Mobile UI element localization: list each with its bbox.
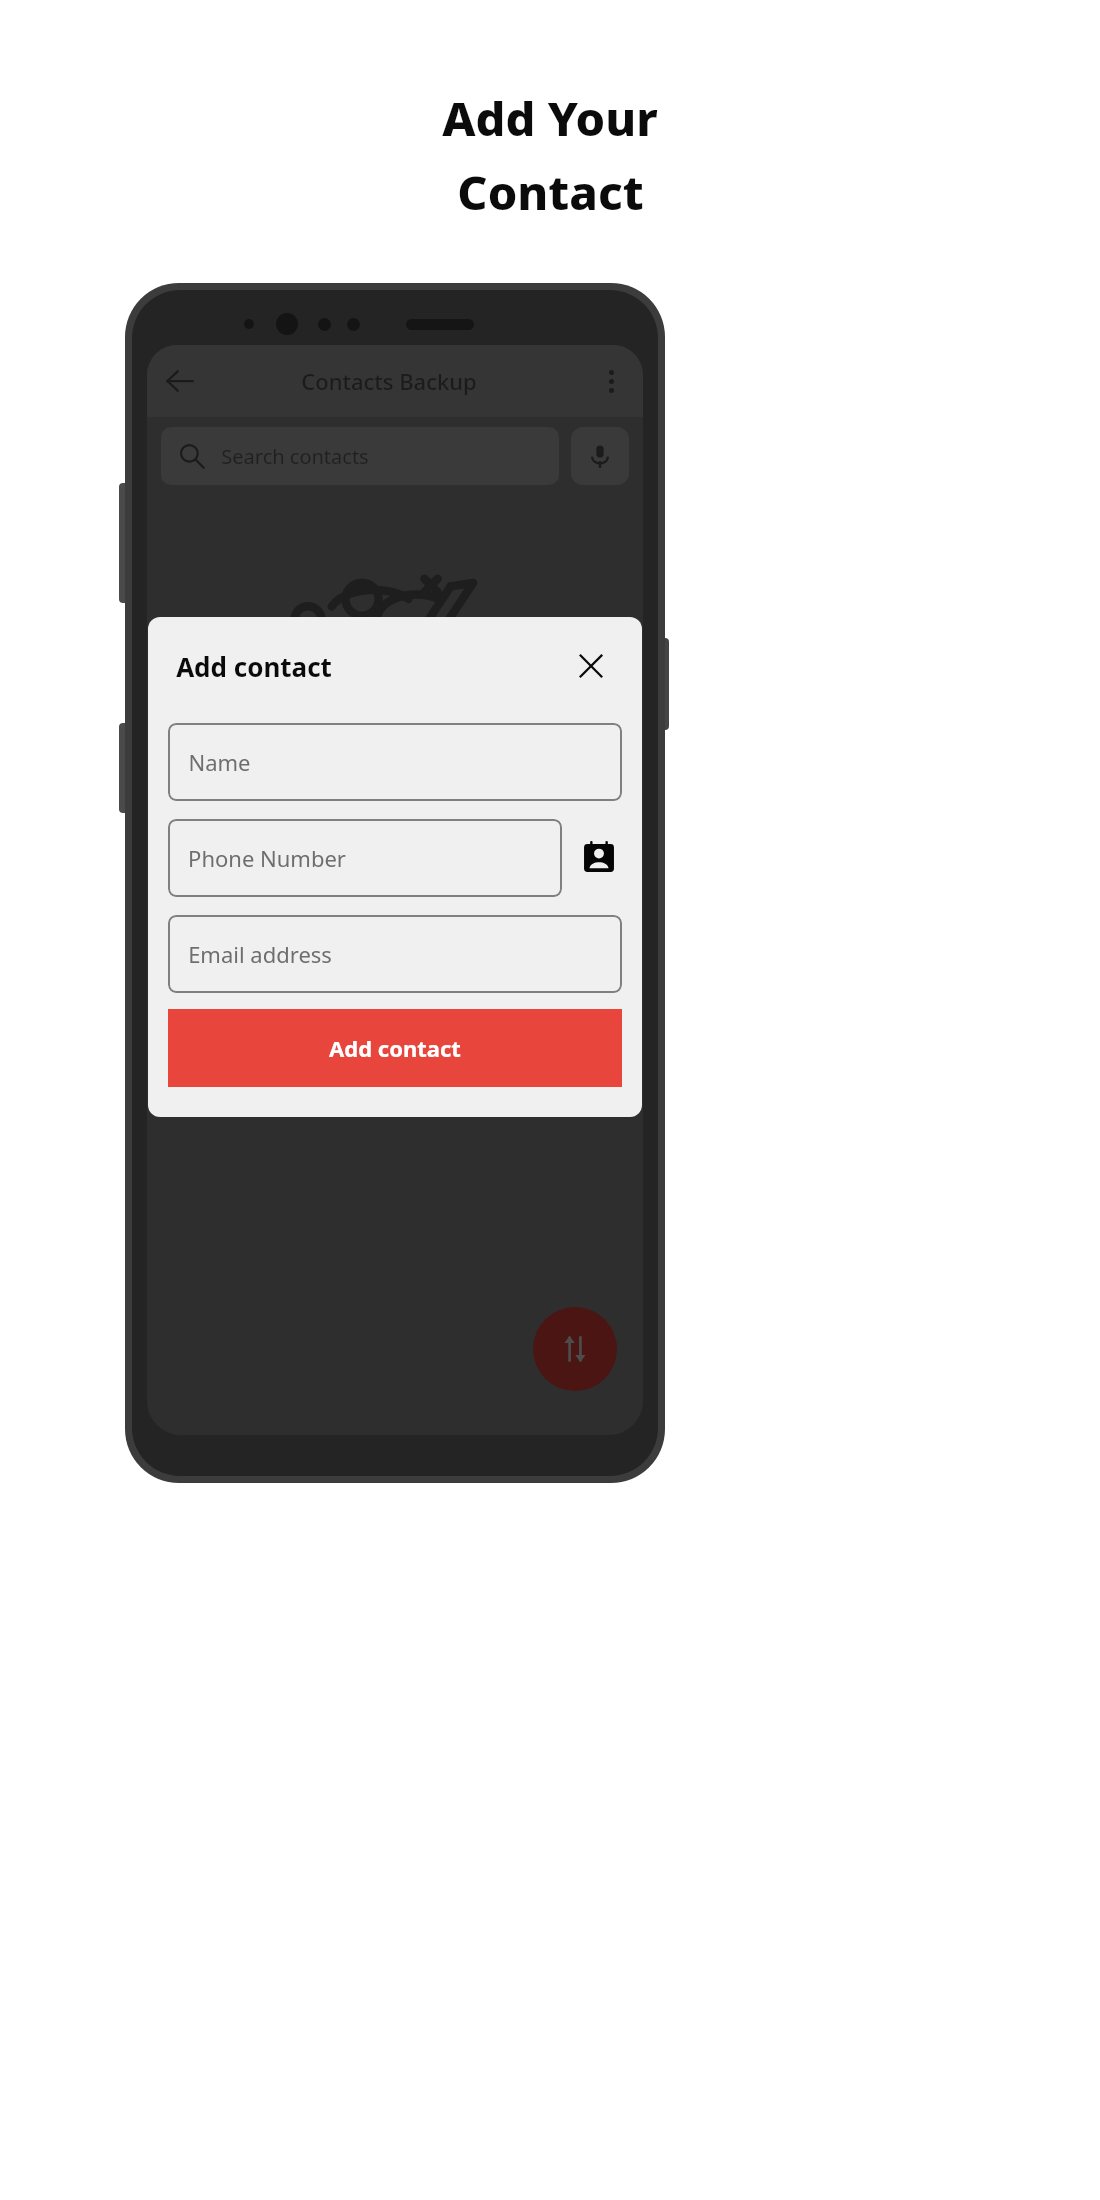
button[interactable]: Add contact — [168, 1009, 622, 1087]
staticText: Name — [188, 747, 251, 777]
staticText: Add contact — [176, 649, 332, 684]
button[interactable]: Phone Number — [168, 819, 562, 897]
staticText: Email address — [188, 939, 332, 969]
button[interactable]: Email address — [168, 915, 622, 993]
staticText: Search contacts — [221, 443, 369, 470]
button[interactable]: Back — [153, 354, 207, 408]
button[interactable]: More options — [587, 357, 635, 405]
button[interactable]: Close — [568, 643, 614, 689]
button[interactable]: Voice search — [571, 427, 629, 485]
staticText: Contact — [457, 160, 644, 224]
button[interactable]: Pick from contacts — [576, 835, 622, 881]
staticText: Phone Number — [188, 843, 346, 873]
button[interactable]: Sync contacts — [533, 1307, 617, 1391]
staticText: Contacts Backup — [301, 366, 477, 396]
staticText: Add contact — [329, 1033, 461, 1063]
button[interactable]: Search contacts — [161, 427, 559, 485]
staticText: Add Your — [442, 86, 658, 150]
button[interactable]: Name — [168, 723, 622, 801]
